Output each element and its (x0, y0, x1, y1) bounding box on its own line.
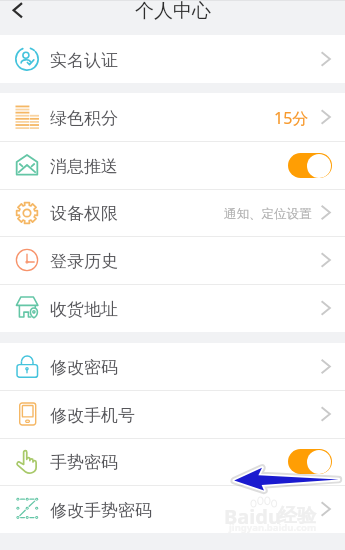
staticText: 修改密码 (50, 357, 118, 378)
staticText: 个人中心 (135, 0, 211, 23)
staticText: jingyan.baidu.com (229, 521, 317, 534)
staticText: 绿色积分 (50, 108, 118, 129)
staticText: 手势密码 (50, 452, 118, 473)
staticText: 消息推送 (50, 156, 118, 177)
staticText: 经验 (278, 504, 316, 528)
button[interactable]: 修改手机号 (0, 390, 345, 438)
button[interactable]: 修改密码 (0, 343, 345, 390)
staticText: 收货地址 (50, 299, 118, 320)
staticText: Baidu (224, 503, 281, 530)
button[interactable]: 消息推送 (0, 141, 345, 189)
staticText: 设备权限 (50, 203, 118, 224)
button[interactable]: Back (0, 0, 36, 34)
button[interactable]: 登录历史 (0, 236, 345, 284)
button[interactable]: 绿色积分 (0, 93, 345, 141)
staticText: 通知、定位设置 (224, 206, 312, 222)
staticText: 实名认证 (50, 50, 118, 71)
button[interactable]: 收货地址 (0, 284, 345, 332)
button[interactable]: 手势密码 (0, 438, 345, 485)
staticText: 登录历史 (50, 251, 118, 272)
staticText: 修改手势密码 (50, 500, 152, 521)
button[interactable]: 实名认证 (0, 35, 345, 83)
staticText: 修改手机号 (50, 405, 135, 426)
staticText: 15分 (274, 107, 309, 129)
button[interactable]: 设备权限 (0, 189, 345, 236)
button[interactable]: 修改手势密码 (0, 485, 345, 533)
